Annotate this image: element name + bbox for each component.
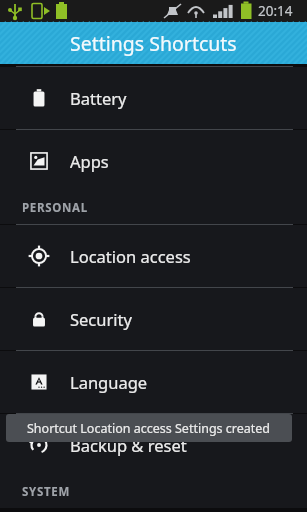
staticText: 20:14 bbox=[258, 2, 293, 20]
staticText: Backup & reset bbox=[70, 434, 187, 456]
button[interactable]: Location access bbox=[0, 225, 307, 287]
button[interactable]: Backup & reset bbox=[0, 414, 307, 476]
staticText: Battery bbox=[70, 87, 127, 109]
staticText: PERSONAL bbox=[22, 200, 88, 216]
button[interactable]: Apps bbox=[0, 130, 307, 192]
staticText: Shortcut Location access Settings create… bbox=[27, 420, 271, 437]
staticText: Language bbox=[70, 371, 148, 393]
button[interactable]: Battery bbox=[0, 67, 307, 129]
staticText: Security bbox=[70, 308, 132, 330]
staticText: Location access bbox=[70, 245, 191, 267]
button[interactable]: Security bbox=[0, 288, 307, 350]
staticText: SYSTEM bbox=[22, 484, 70, 500]
staticText: Apps bbox=[70, 150, 109, 172]
staticText: Settings Shortcuts bbox=[70, 30, 237, 57]
button[interactable]: Language bbox=[0, 351, 307, 413]
